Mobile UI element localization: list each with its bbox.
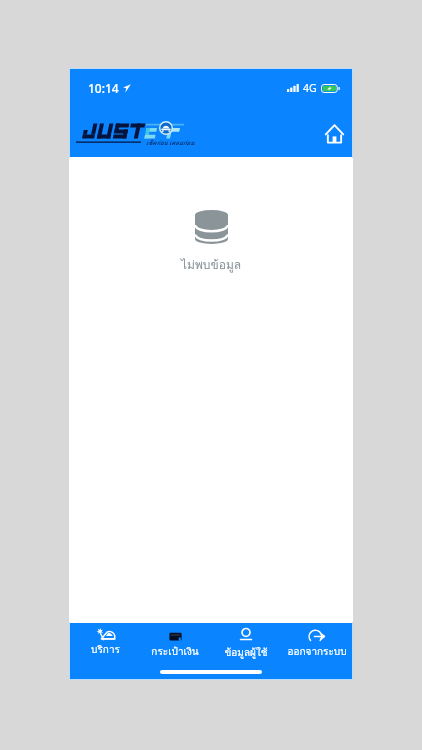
staticText: กระเป๋าเงิน xyxy=(151,644,199,660)
staticText: ออกจากระบบ xyxy=(287,644,347,660)
button[interactable]: ข้อมูลผู้ใช้ xyxy=(210,623,281,665)
staticText: ข้อมูลผู้ใช้ xyxy=(224,645,268,661)
staticText: ไม่พบข้อมูล xyxy=(181,255,242,274)
staticText: 10:14 xyxy=(88,80,119,96)
button[interactable]: บริการ xyxy=(70,623,140,665)
staticText: เช็คก่อน เคลมก่อน xyxy=(146,138,195,148)
staticText: บริการ xyxy=(91,642,120,658)
button[interactable]: ออกจากระบบ xyxy=(281,623,352,665)
button[interactable]: กระเป๋าเงิน xyxy=(140,623,210,665)
staticText: 4G xyxy=(303,81,317,95)
button[interactable]: Home xyxy=(316,116,352,152)
